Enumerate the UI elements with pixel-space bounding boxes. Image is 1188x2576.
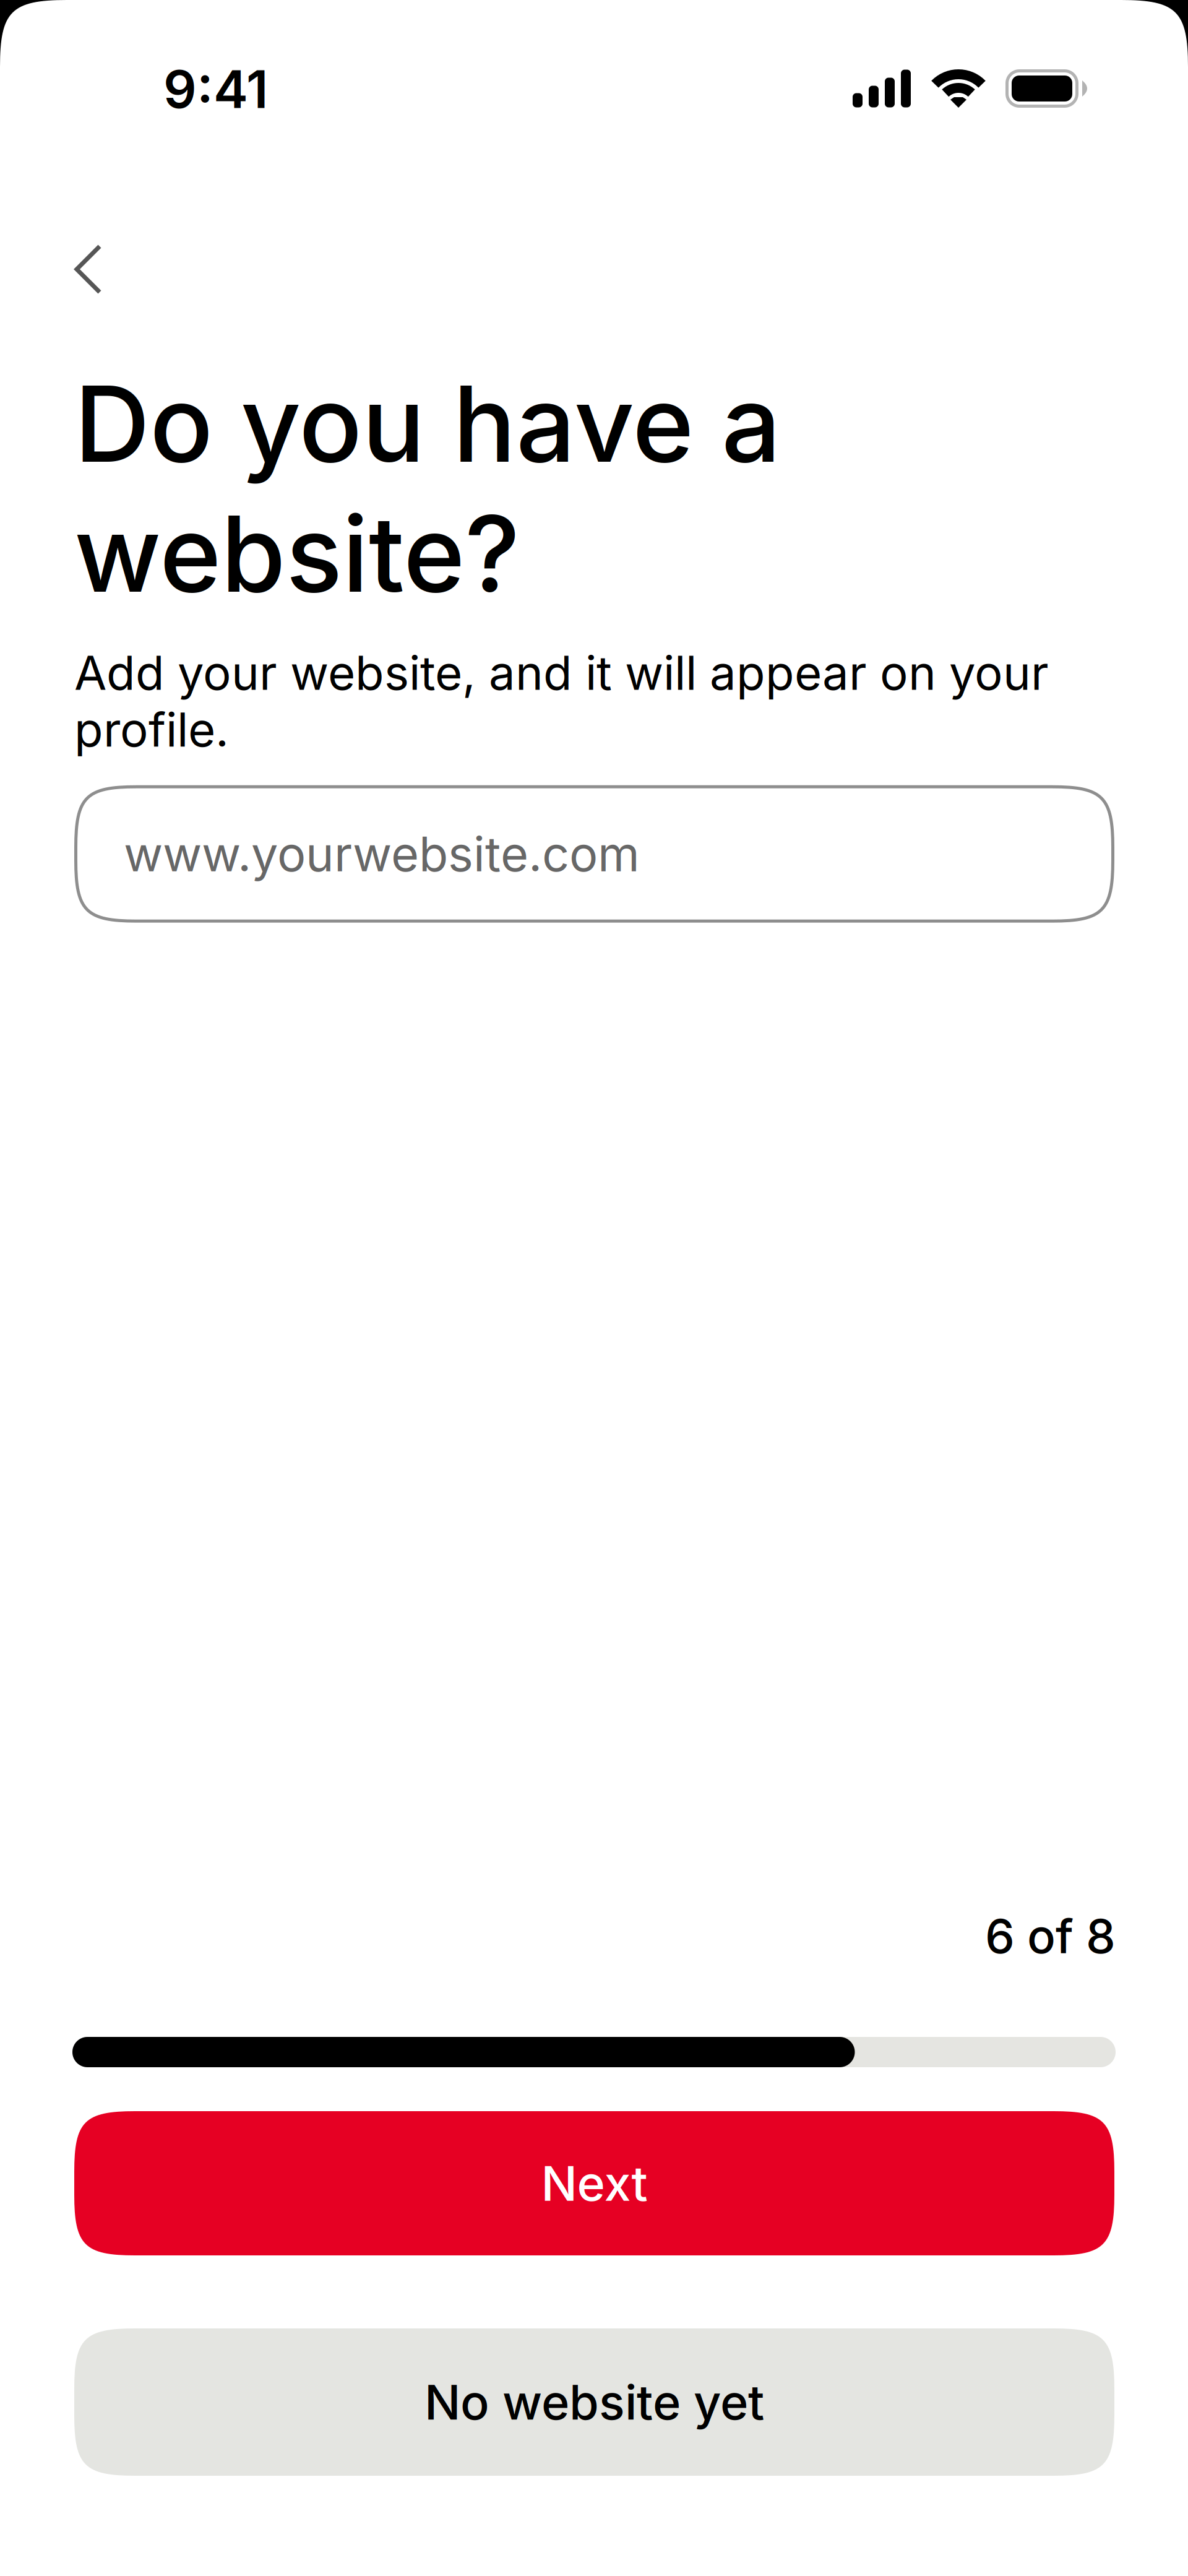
staticText: Do you have a website? bbox=[74, 360, 781, 617]
staticText: Next bbox=[541, 2154, 648, 2212]
button[interactable]: No website yet bbox=[74, 2328, 1114, 2476]
button[interactable]: Next bbox=[74, 2111, 1114, 2255]
staticText: Add your website, and it will appear on … bbox=[74, 644, 1049, 758]
staticText: No website yet bbox=[424, 2373, 764, 2431]
staticText: 9:41 bbox=[163, 58, 269, 121]
staticText: 6 of 8 bbox=[985, 1908, 1116, 1964]
button[interactable]: www.yourwebsite.com bbox=[74, 785, 1114, 923]
button[interactable]: Back bbox=[0, 220, 140, 321]
staticText: www.yourwebsite.com bbox=[124, 825, 640, 883]
